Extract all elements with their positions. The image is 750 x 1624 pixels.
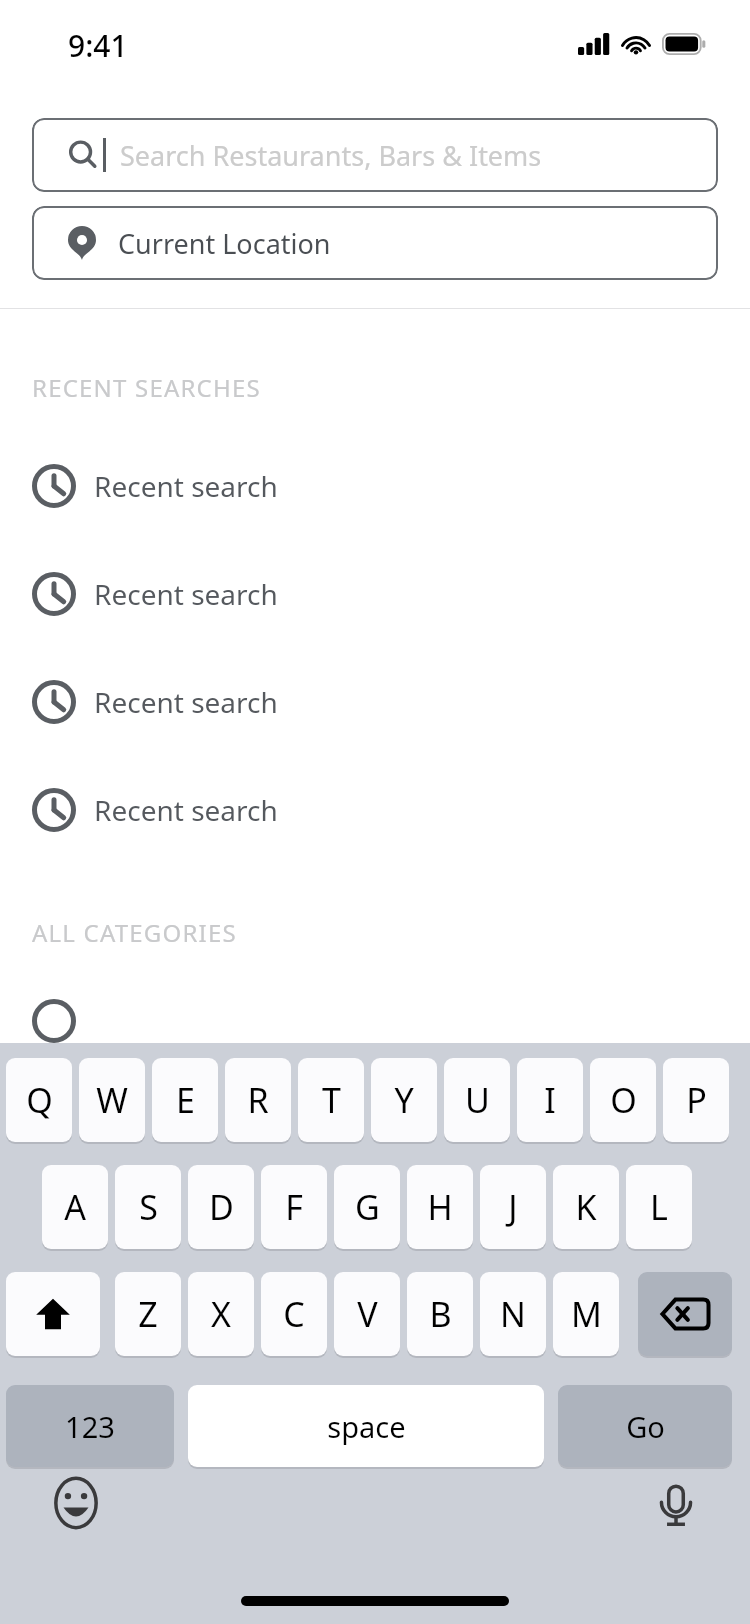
button[interactable]: Recent search — [0, 462, 750, 510]
staticText: S — [139, 1184, 158, 1230]
staticText: H — [427, 1184, 453, 1230]
staticText: A — [64, 1184, 86, 1230]
button[interactable]: Emoji — [48, 1475, 104, 1531]
button[interactable]: 123 — [6, 1385, 174, 1467]
button[interactable]: L — [626, 1165, 692, 1249]
button[interactable]: N — [480, 1272, 546, 1356]
button[interactable]: I — [517, 1058, 583, 1142]
button[interactable]: U — [444, 1058, 510, 1142]
button[interactable]: D — [188, 1165, 254, 1249]
button[interactable]: Y — [371, 1058, 437, 1142]
button[interactable]: M — [553, 1272, 619, 1356]
button[interactable]: Shift — [6, 1272, 100, 1356]
staticText: M — [571, 1291, 602, 1337]
staticText: X — [211, 1291, 231, 1337]
staticText: Search Restaurants, Bars & Items — [120, 137, 542, 174]
staticText: I — [544, 1077, 556, 1123]
staticText: Y — [394, 1077, 414, 1123]
button[interactable]: space — [188, 1385, 544, 1467]
staticText: ALL CATEGORIES — [32, 916, 237, 949]
button[interactable]: K — [553, 1165, 619, 1249]
staticText: R — [247, 1077, 269, 1123]
staticText: C — [283, 1291, 305, 1337]
button[interactable]: Backspace — [638, 1272, 732, 1356]
staticText: E — [176, 1077, 195, 1123]
staticText: U — [465, 1077, 490, 1123]
staticText: J — [508, 1184, 518, 1230]
staticText: Z — [138, 1291, 158, 1337]
staticText: 9:41 — [68, 25, 128, 66]
button[interactable]: V — [334, 1272, 400, 1356]
button[interactable]: T — [298, 1058, 364, 1142]
staticText: Q — [26, 1077, 53, 1123]
staticText: G — [355, 1184, 380, 1230]
button[interactable]: B — [407, 1272, 473, 1356]
button[interactable]: F — [261, 1165, 327, 1249]
button[interactable]: A — [42, 1165, 108, 1249]
button[interactable]: W — [79, 1058, 145, 1142]
staticText: Recent search — [94, 683, 278, 721]
button[interactable]: S — [115, 1165, 181, 1249]
button[interactable]: Dictate — [648, 1475, 704, 1531]
button[interactable]: E — [152, 1058, 218, 1142]
staticText: V — [357, 1291, 378, 1337]
button[interactable]: O — [590, 1058, 656, 1142]
staticText: B — [429, 1291, 452, 1337]
staticText: Current Location — [118, 225, 331, 262]
button[interactable]: X — [188, 1272, 254, 1356]
staticText: T — [322, 1077, 341, 1123]
button[interactable]: R — [225, 1058, 291, 1142]
staticText: RECENT SEARCHES — [32, 371, 261, 404]
button[interactable]: H — [407, 1165, 473, 1249]
button[interactable]: G — [334, 1165, 400, 1249]
staticText: Go — [626, 1407, 665, 1446]
staticText: D — [209, 1184, 234, 1230]
button[interactable]: C — [261, 1272, 327, 1356]
staticText: Recent search — [94, 791, 278, 829]
button[interactable]: Search Restaurants, Bars & Items — [32, 118, 718, 192]
staticText: K — [575, 1184, 597, 1230]
button[interactable]: Go — [558, 1385, 732, 1467]
button[interactable]: P — [663, 1058, 729, 1142]
staticText: Recent search — [94, 575, 278, 613]
staticText: Recent search — [94, 467, 278, 505]
button[interactable]: Z — [115, 1272, 181, 1356]
button[interactable]: Recent search — [0, 570, 750, 618]
staticText: W — [96, 1077, 128, 1123]
staticText: N — [500, 1291, 526, 1337]
button[interactable]: Current Location — [32, 206, 718, 280]
staticText: L — [650, 1184, 668, 1230]
button[interactable]: Recent search — [0, 786, 750, 834]
staticText: P — [686, 1077, 707, 1123]
button[interactable]: Recent search — [0, 678, 750, 726]
staticText: 123 — [65, 1407, 115, 1446]
staticText: O — [610, 1077, 637, 1123]
staticText: space — [327, 1407, 406, 1446]
button[interactable]: J — [480, 1165, 546, 1249]
staticText: F — [285, 1184, 303, 1230]
button[interactable] — [0, 999, 750, 1059]
button[interactable]: Q — [6, 1058, 72, 1142]
